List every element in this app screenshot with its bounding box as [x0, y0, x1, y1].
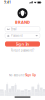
staticText: BRAND — [15, 20, 30, 25]
staticText: Forgot password? — [11, 49, 34, 52]
staticText: Sign In — [15, 41, 29, 47]
button[interactable]: Forgot password? — [11, 49, 34, 52]
staticText: No account? — [9, 73, 25, 77]
button[interactable]: No account? — [9, 73, 36, 77]
staticText: 9:41 — [4, 1, 11, 4]
staticText: Password — [11, 34, 23, 37]
staticText: Sign Up — [25, 73, 36, 77]
staticText: Email — [11, 27, 17, 31]
button[interactable]: Sign In — [5, 41, 40, 47]
button[interactable]: Password — [5, 33, 40, 38]
button[interactable]: Email — [5, 26, 40, 32]
